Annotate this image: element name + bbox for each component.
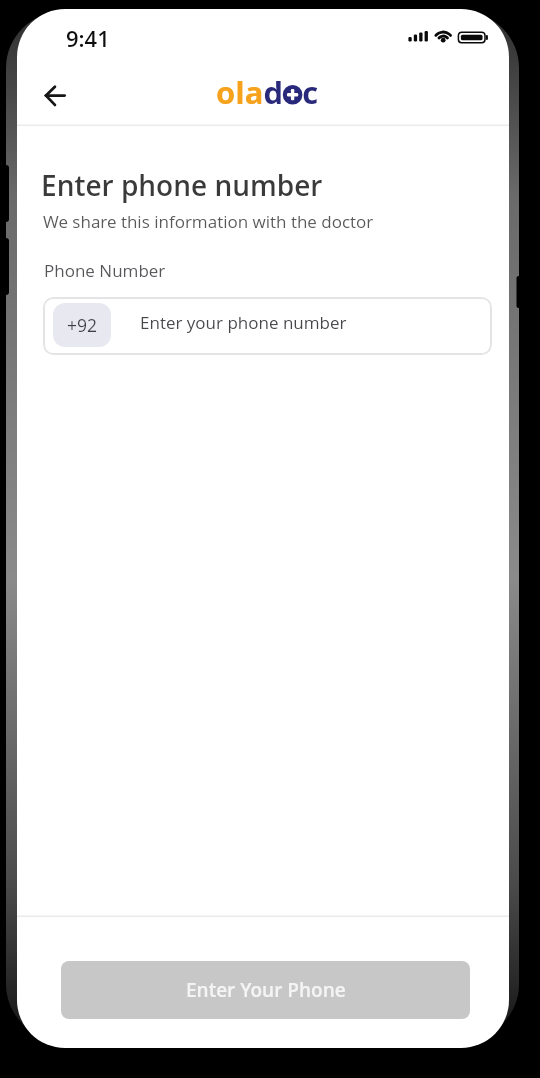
staticText: Enter phone number — [41, 166, 323, 204]
staticText: Enter Your Phone — [186, 977, 346, 1003]
staticText: 9:41 — [66, 23, 110, 53]
staticText: We share this information with the docto… — [43, 210, 374, 233]
button[interactable]: +92 — [43, 297, 492, 355]
button[interactable] — [36, 81, 76, 111]
button[interactable]: Enter Your Phone — [61, 961, 470, 1019]
staticText: Enter your phone number — [140, 311, 347, 334]
staticText: Phone Number — [44, 259, 166, 282]
staticText: oladoc — [216, 71, 319, 113]
staticText: +92 — [67, 313, 98, 337]
